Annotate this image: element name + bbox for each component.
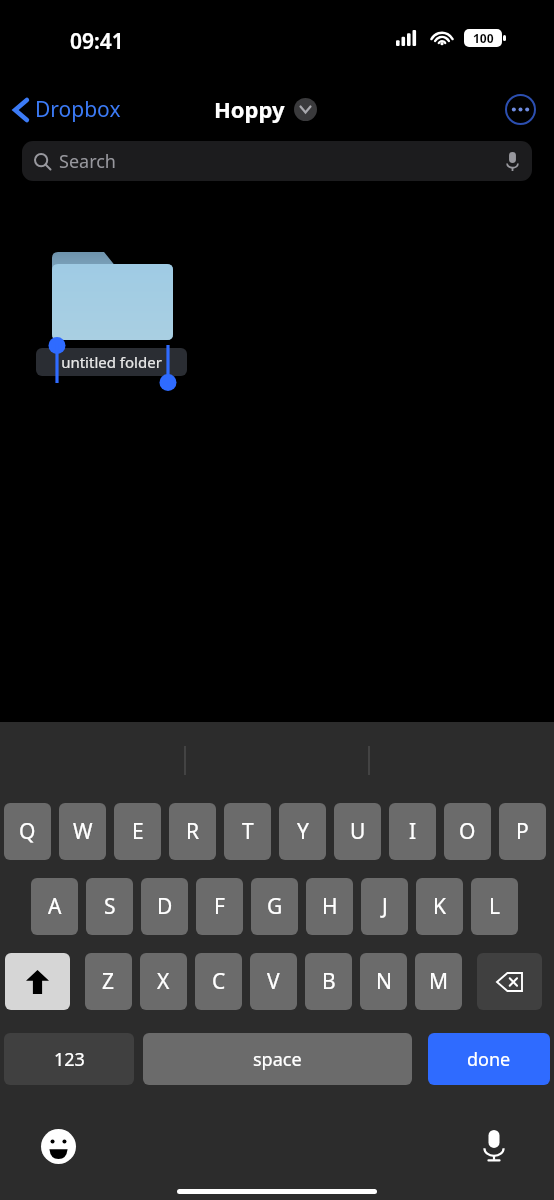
staticText: J xyxy=(382,892,388,921)
button[interactable]: Dropbox xyxy=(8,89,127,130)
button[interactable]: Hoppy xyxy=(214,94,317,124)
staticText: V xyxy=(267,967,280,996)
button[interactable]: F xyxy=(196,878,243,935)
button[interactable]: J xyxy=(361,878,408,935)
staticText: Search xyxy=(59,149,116,174)
button[interactable]: H xyxy=(306,878,353,935)
button[interactable]: D xyxy=(141,878,188,935)
staticText: R xyxy=(186,817,200,846)
staticText: Z xyxy=(102,967,115,996)
button[interactable]: Dictation xyxy=(470,1122,518,1170)
button[interactable]: done xyxy=(428,1033,550,1085)
staticText: space xyxy=(253,1047,302,1072)
staticText: Q xyxy=(19,817,36,846)
button[interactable]: Search xyxy=(22,141,532,181)
button[interactable]: X xyxy=(140,953,187,1010)
staticText: done xyxy=(467,1047,511,1072)
staticText: H xyxy=(322,892,338,921)
button[interactable]: A xyxy=(31,878,78,935)
staticText: U xyxy=(350,817,366,846)
button[interactable]: C xyxy=(195,953,242,1010)
staticText: Y xyxy=(297,817,309,846)
button[interactable]: Emoji xyxy=(34,1122,82,1170)
staticText: A xyxy=(48,892,62,921)
staticText: K xyxy=(433,892,446,921)
button[interactable]: G xyxy=(251,878,298,935)
staticText: T xyxy=(242,817,254,846)
staticText: C xyxy=(212,967,226,996)
staticText: I xyxy=(409,817,417,846)
staticText: 100 xyxy=(473,30,494,46)
button[interactable]: untitled folder xyxy=(36,348,187,376)
button[interactable]: More options xyxy=(505,94,536,125)
button[interactable]: I xyxy=(389,803,436,860)
staticText: L xyxy=(489,892,501,921)
button[interactable]: Z xyxy=(85,953,132,1010)
button[interactable]: 123 xyxy=(4,1033,134,1085)
staticText: M xyxy=(429,967,449,996)
button[interactable]: P xyxy=(499,803,546,860)
button[interactable]: O xyxy=(444,803,491,860)
staticText: E xyxy=(132,817,144,846)
staticText: Dropbox xyxy=(35,95,121,124)
button[interactable]: E xyxy=(114,803,161,860)
button[interactable]: Q xyxy=(4,803,51,860)
button[interactable]: K xyxy=(416,878,463,935)
button[interactable]: S xyxy=(86,878,133,935)
button[interactable]: M xyxy=(415,953,462,1010)
button[interactable]: U xyxy=(334,803,381,860)
button[interactable]: Y xyxy=(279,803,326,860)
button[interactable]: L xyxy=(471,878,518,935)
button[interactable]: W xyxy=(59,803,106,860)
staticText: F xyxy=(214,892,225,921)
staticText: Hoppy xyxy=(214,94,285,124)
staticText: P xyxy=(516,817,529,846)
button[interactable]: T xyxy=(224,803,271,860)
button[interactable]: V xyxy=(250,953,297,1010)
staticText: 123 xyxy=(54,1047,85,1072)
button[interactable]: R xyxy=(169,803,216,860)
button[interactable]: N xyxy=(360,953,407,1010)
button[interactable]: Backspace xyxy=(477,953,542,1010)
staticText: G xyxy=(267,892,283,921)
staticText: X xyxy=(157,967,170,996)
staticText: O xyxy=(459,817,476,846)
other: Voice search xyxy=(505,152,520,171)
button[interactable]: space xyxy=(143,1033,412,1085)
staticText: 09:41 xyxy=(70,27,124,56)
staticText: untitled folder xyxy=(61,352,162,372)
staticText: W xyxy=(73,817,93,846)
staticText: S xyxy=(104,892,116,921)
staticText: D xyxy=(157,892,173,921)
button[interactable]: Shift xyxy=(5,953,70,1010)
staticText: N xyxy=(376,967,392,996)
button[interactable]: B xyxy=(305,953,352,1010)
staticText: B xyxy=(322,967,336,996)
